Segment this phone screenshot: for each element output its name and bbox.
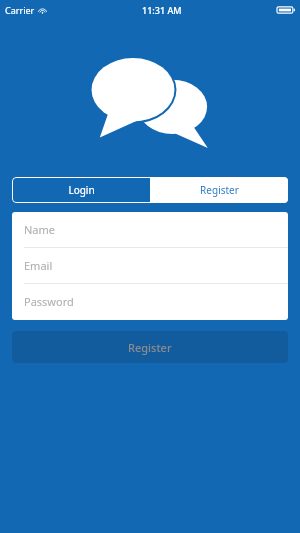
staticText: Login — [68, 183, 95, 197]
button[interactable]: Register — [12, 331, 288, 363]
button[interactable]: Email — [12, 248, 288, 283]
staticText: Register — [200, 183, 239, 197]
staticText: Name — [24, 222, 56, 237]
staticText: Email — [24, 258, 53, 273]
button[interactable]: Login — [12, 177, 150, 203]
staticText: Register — [128, 340, 172, 355]
button[interactable]: Name — [12, 212, 288, 247]
staticText: 11:31 AM — [142, 4, 182, 16]
staticText: Carrier — [5, 4, 35, 16]
other: Chat logo — [82, 53, 218, 145]
staticText: Password — [24, 294, 74, 309]
button[interactable]: Register — [150, 177, 288, 203]
button[interactable]: Password — [12, 284, 288, 319]
